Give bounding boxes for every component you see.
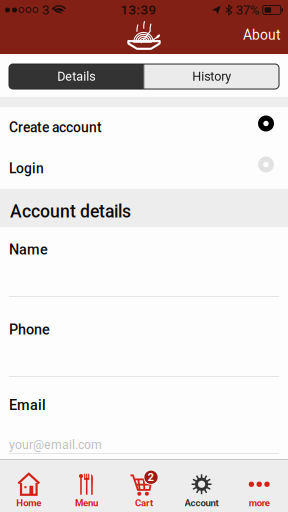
- staticText: Account: [185, 497, 219, 508]
- staticText: Cart: [135, 497, 153, 508]
- staticText: History: [192, 69, 231, 84]
- button[interactable]: More: [230, 459, 288, 512]
- staticText: Create account: [9, 119, 102, 136]
- button[interactable]: Details: [9, 64, 143, 89]
- staticText: your@email.com: [9, 438, 102, 452]
- staticText: About: [243, 27, 281, 43]
- staticText: more: [249, 497, 270, 508]
- staticText: 3: [42, 2, 49, 18]
- staticText: Email: [9, 397, 46, 414]
- staticText: 13:39: [120, 2, 156, 18]
- button[interactable]: Home: [0, 459, 58, 512]
- staticText: Account details: [10, 201, 131, 222]
- button[interactable]: History: [144, 64, 279, 89]
- staticText: 37%: [236, 2, 260, 18]
- staticText: Phone: [9, 321, 50, 338]
- button[interactable]: Create account: [0, 107, 288, 148]
- staticText: Login: [9, 160, 44, 177]
- button[interactable]: Account: [173, 459, 230, 512]
- staticText: Home: [16, 497, 41, 508]
- button[interactable]: Cart, 2 items: [115, 459, 173, 512]
- staticText: Name: [9, 241, 48, 258]
- button[interactable]: About: [233, 20, 288, 53]
- button[interactable]: Menu: [58, 459, 115, 512]
- staticText: 2: [147, 471, 154, 484]
- staticText: Details: [57, 69, 95, 84]
- staticText: Menu: [75, 497, 98, 508]
- button[interactable]: Login: [0, 148, 288, 189]
